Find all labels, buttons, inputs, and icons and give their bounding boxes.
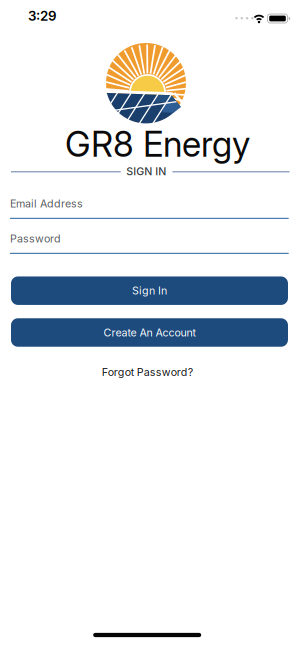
staticText: GR8 Energy xyxy=(65,124,250,165)
button[interactable]: Create An Account xyxy=(11,318,288,347)
staticText: SIGN IN xyxy=(126,165,166,178)
staticText: Email Address xyxy=(10,197,83,210)
staticText: 3:29 xyxy=(28,8,57,24)
button[interactable]: Sign In xyxy=(11,276,288,305)
button[interactable]: Password xyxy=(0,229,300,253)
staticText: Password xyxy=(10,232,61,245)
button[interactable]: Email Address xyxy=(0,194,300,218)
button[interactable]: Forgot Password? xyxy=(102,366,193,378)
staticText: Forgot Password? xyxy=(102,366,193,378)
staticText: Create An Account xyxy=(103,326,195,339)
staticText: Sign In xyxy=(132,284,167,297)
